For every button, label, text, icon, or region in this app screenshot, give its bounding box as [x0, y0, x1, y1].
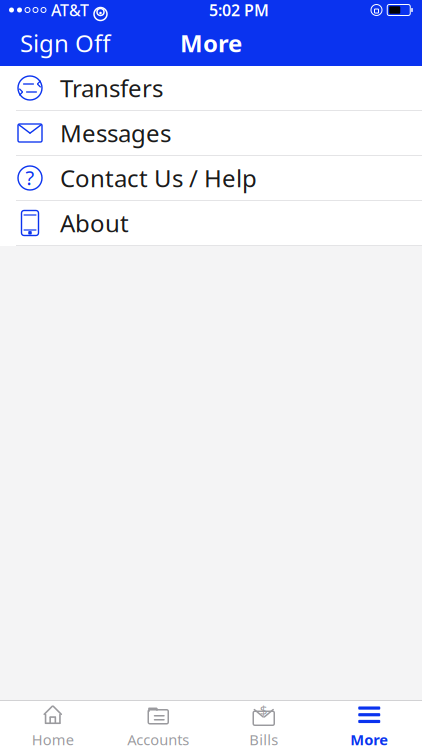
staticText: More	[350, 730, 388, 749]
button[interactable]: Sign Off	[0, 19, 131, 67]
button[interactable]: Home	[0, 697, 105, 750]
staticText: $	[260, 701, 268, 719]
staticText: 5:02 PM	[209, 0, 269, 21]
staticText: Sign Off	[20, 27, 111, 59]
staticText: Home	[32, 730, 74, 749]
staticText: Messages	[60, 117, 171, 149]
button[interactable]: Transfers	[0, 66, 422, 111]
staticText: AT&T	[51, 0, 89, 21]
button[interactable]: $	[211, 697, 316, 750]
button[interactable]: Accounts	[105, 697, 211, 750]
button[interactable]: More	[316, 697, 422, 750]
staticText: About	[60, 207, 129, 239]
button[interactable]: About	[0, 201, 422, 246]
staticText: Accounts	[127, 730, 189, 749]
staticText: Contact Us / Help	[60, 162, 257, 194]
staticText: ?	[25, 164, 34, 191]
staticText: Bills	[249, 730, 278, 749]
staticText: More	[180, 27, 242, 59]
button[interactable]: Messages	[0, 111, 422, 156]
button[interactable]: ?	[0, 156, 422, 201]
staticText: Transfers	[60, 72, 163, 104]
